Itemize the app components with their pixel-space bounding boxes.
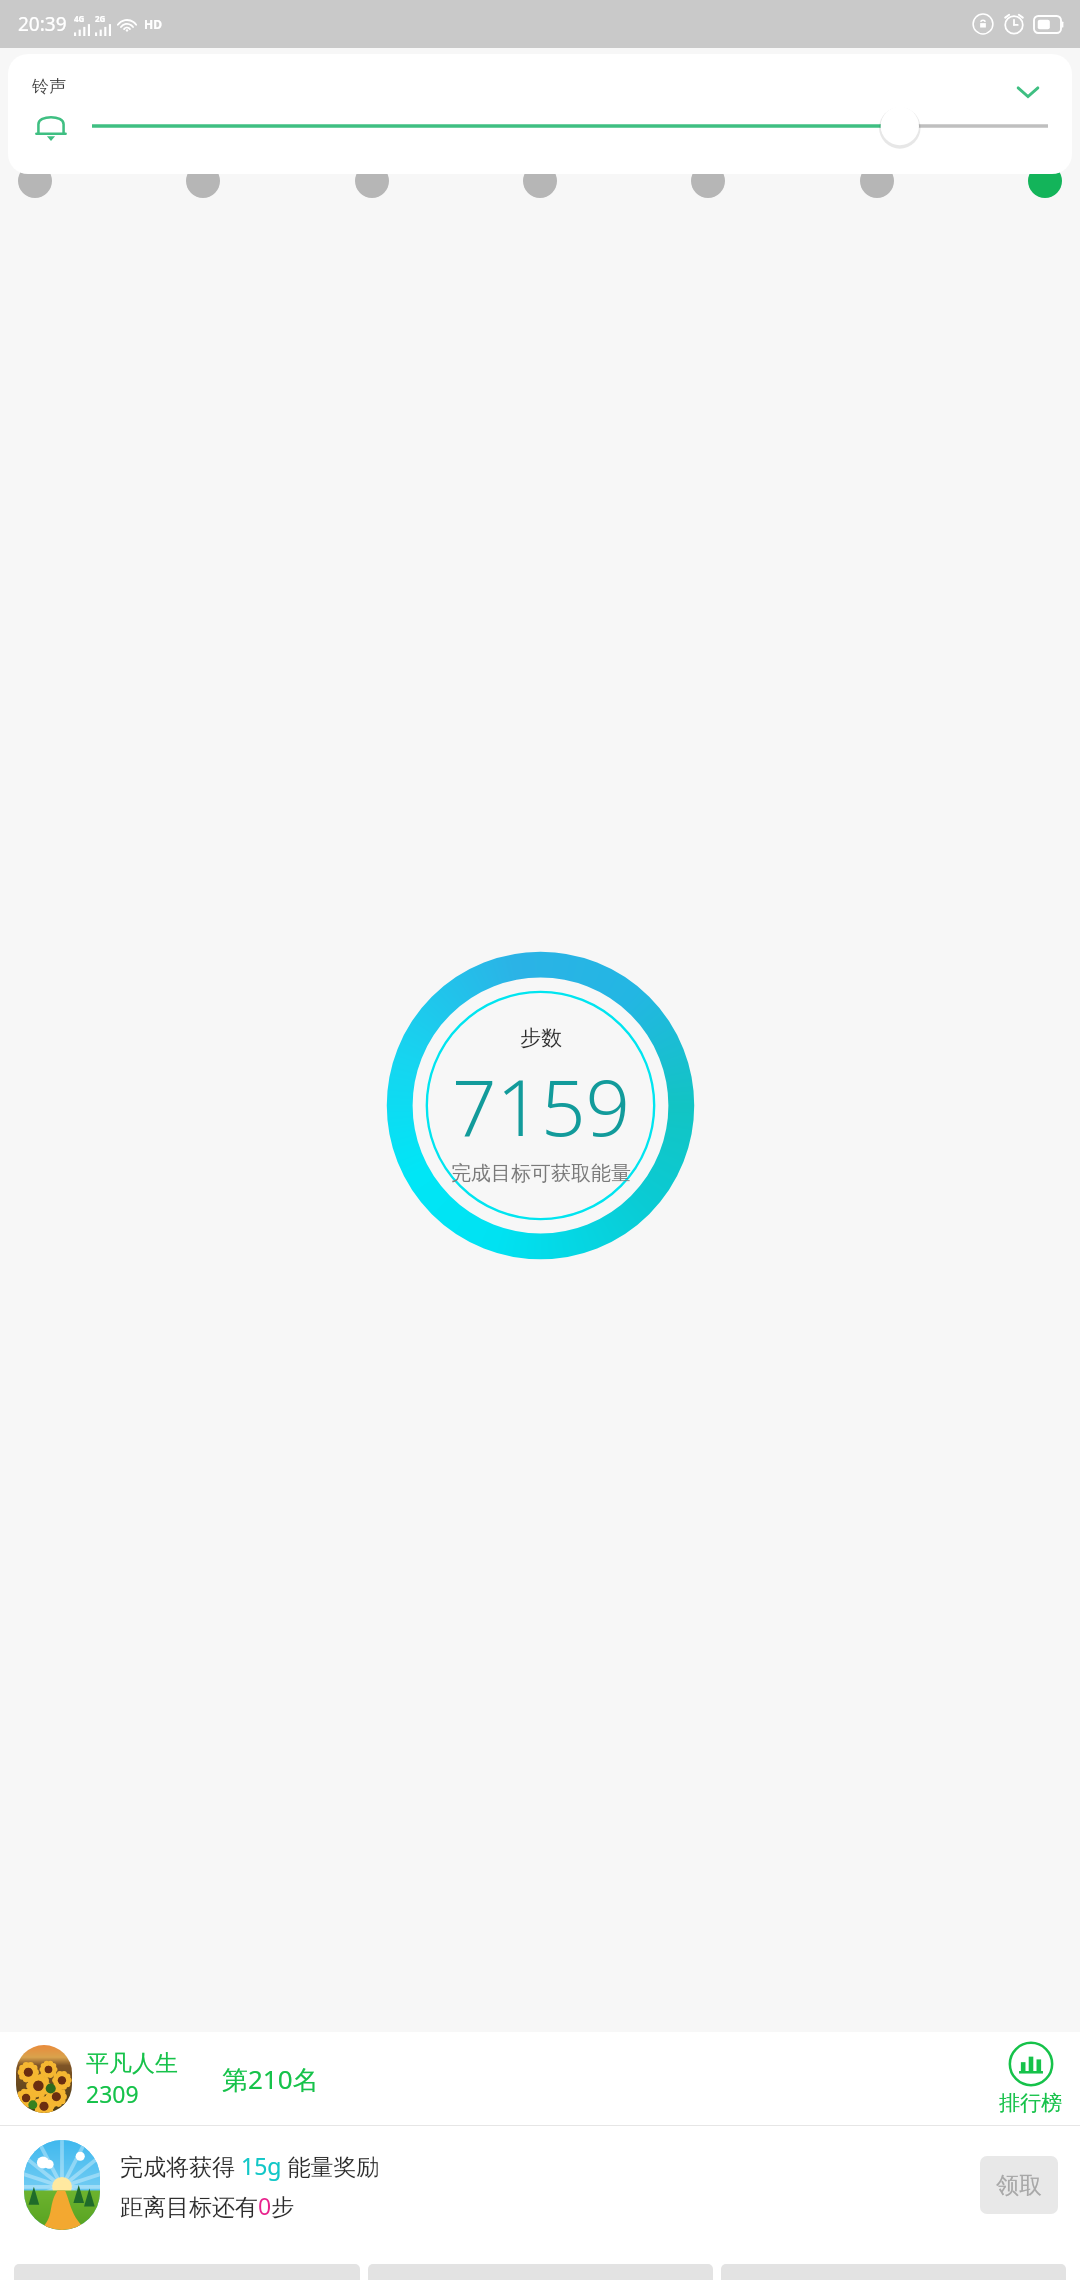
- other: Battery: [1034, 16, 1064, 33]
- button[interactable]: Collapse: [1006, 70, 1050, 114]
- staticText: 第210名: [222, 2061, 319, 2097]
- staticText: 20:39: [18, 11, 67, 37]
- staticText: 2G: [95, 13, 106, 24]
- staticText: 7159: [452, 1053, 631, 1159]
- button[interactable]: 排行榜: [999, 2041, 1062, 2116]
- other: Alarm: [1003, 13, 1025, 35]
- staticText: 完成将获得 15g 能量奖励: [120, 2150, 380, 2181]
- other: Rotation lock: [972, 13, 994, 35]
- staticText: 4G: [74, 13, 85, 24]
- button[interactable]: 步数: [383, 948, 698, 1263]
- staticText: 步数: [520, 1025, 562, 1051]
- staticText: 距离目标还有0步: [120, 2190, 295, 2221]
- button[interactable]: Ringer: [30, 105, 72, 147]
- staticText: 2309: [86, 2078, 139, 2109]
- staticText: 平凡人生: [86, 2049, 178, 2078]
- staticText: HD: [144, 16, 162, 32]
- button[interactable]: 平凡人生: [0, 2032, 1080, 2125]
- button[interactable]: 领取: [980, 2156, 1058, 2214]
- staticText: 铃声: [32, 76, 66, 97]
- button[interactable]: Volume: [92, 102, 1048, 150]
- staticText: 领取: [996, 2171, 1042, 2200]
- staticText: 完成目标可获取能量: [451, 1161, 631, 1186]
- staticText: 排行榜: [999, 2090, 1062, 2116]
